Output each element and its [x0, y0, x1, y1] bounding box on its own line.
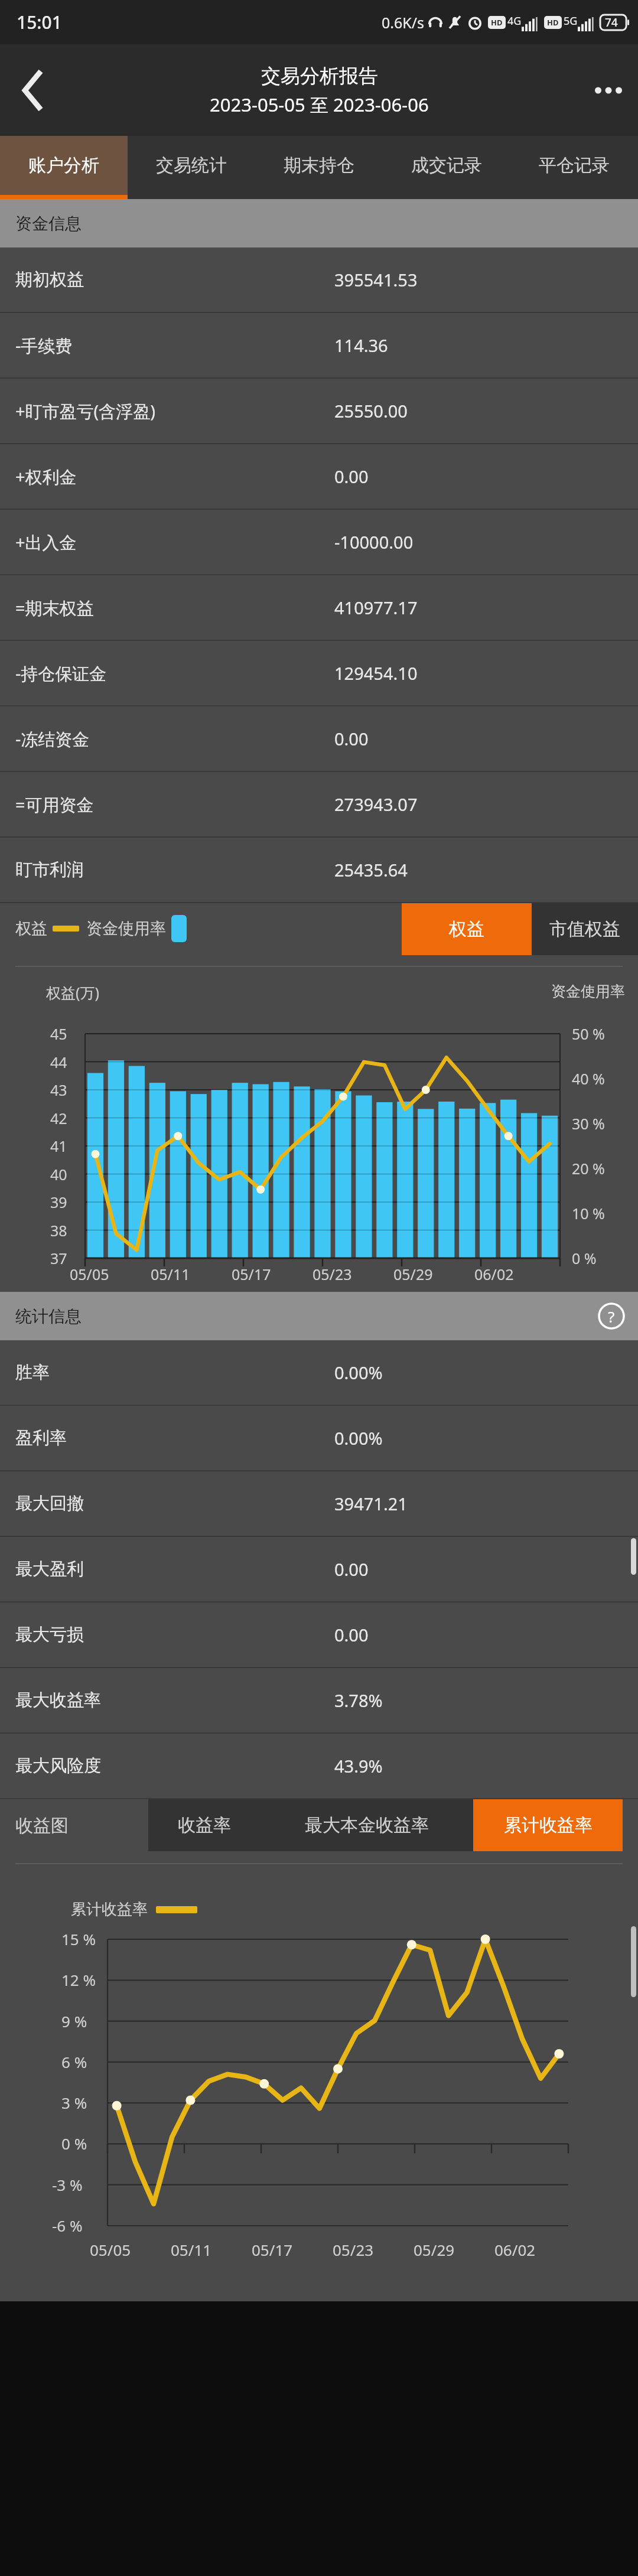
- staticText: 3.78%: [334, 1689, 383, 1712]
- staticText: 15:01: [17, 10, 62, 34]
- staticText: 42: [50, 1108, 67, 1128]
- staticText: 最大回撤: [15, 1493, 334, 1515]
- staticText: 06/02: [494, 2239, 536, 2260]
- button[interactable]: Back: [0, 58, 65, 123]
- button[interactable]: 市值权益: [532, 903, 638, 955]
- button[interactable]: 胜率: [0, 1340, 638, 1405]
- button[interactable]: 最大回撤: [0, 1471, 638, 1536]
- button[interactable]: 盈利率: [0, 1406, 638, 1470]
- staticText: 05/11: [151, 1264, 190, 1284]
- button[interactable]: 交易统计: [128, 136, 255, 199]
- button[interactable]: More options: [579, 58, 638, 123]
- staticText: 累计收益率: [504, 1814, 593, 1836]
- staticText: 0.00%: [334, 1427, 383, 1450]
- button[interactable]: 最大收益率: [0, 1668, 638, 1732]
- staticText: 45: [50, 1024, 67, 1044]
- staticText: 395541.53: [334, 268, 418, 291]
- staticText: 最大风险度: [15, 1755, 334, 1777]
- staticText: 05/29: [414, 2239, 455, 2260]
- staticText: 收益图: [15, 1815, 69, 1837]
- staticText: 05/23: [333, 2239, 374, 2260]
- staticText: 资金信息: [15, 213, 82, 234]
- button[interactable]: 账户分析: [0, 136, 128, 199]
- staticText: 05/23: [313, 1264, 352, 1284]
- staticText: 39: [50, 1192, 67, 1212]
- staticText: 权益: [15, 919, 47, 939]
- staticText: 20 %: [572, 1158, 605, 1178]
- staticText: 12 %: [61, 1969, 96, 1990]
- button[interactable]: +权利金: [0, 444, 638, 509]
- staticText: -10000.00: [334, 530, 414, 553]
- staticText: HD: [491, 17, 503, 28]
- button[interactable]: 期初权益: [0, 247, 638, 312]
- staticText: 44: [50, 1052, 67, 1072]
- staticText: 市值权益: [549, 918, 620, 940]
- staticText: 37: [50, 1248, 67, 1268]
- staticText: 0.00: [334, 727, 369, 750]
- button[interactable]: =期末权益: [0, 575, 638, 640]
- button[interactable]: 收益率: [148, 1799, 261, 1851]
- staticText: 权益(万): [46, 982, 100, 1002]
- staticText: =期末权益: [15, 596, 334, 620]
- staticText: 权益: [449, 918, 484, 940]
- staticText: 2023-05-05 至 2023-06-06: [210, 92, 429, 117]
- staticText: +出入金: [15, 530, 334, 554]
- staticText: 期末持仓: [284, 154, 354, 177]
- button[interactable]: Help: [598, 1302, 625, 1330]
- button[interactable]: 期末持仓: [255, 136, 383, 199]
- button[interactable]: 最大盈利: [0, 1537, 638, 1601]
- button[interactable]: +出入金: [0, 510, 638, 574]
- staticText: 盯市利润: [15, 859, 334, 881]
- staticText: 410977.17: [334, 596, 418, 619]
- staticText: 15 %: [61, 1929, 96, 1949]
- staticText: 交易分析报告: [261, 64, 378, 89]
- button[interactable]: 最大风险度: [0, 1734, 638, 1798]
- staticText: 累计收益率: [71, 1900, 148, 1919]
- staticText: 平仓记录: [539, 154, 610, 177]
- staticText: 50 %: [572, 1024, 605, 1044]
- staticText: 41: [50, 1136, 67, 1156]
- staticText: 129454.10: [334, 662, 418, 685]
- staticText: -3 %: [52, 2174, 83, 2195]
- staticText: 统计信息: [15, 1306, 82, 1327]
- button[interactable]: -手续费: [0, 313, 638, 377]
- button[interactable]: 盯市利润: [0, 838, 638, 902]
- staticText: 05/17: [232, 1264, 271, 1284]
- staticText: 05/11: [171, 2239, 212, 2260]
- button[interactable]: -持仓保证金: [0, 641, 638, 705]
- button[interactable]: 最大本金收益率: [261, 1799, 473, 1851]
- staticText: 43.9%: [334, 1754, 383, 1777]
- staticText: -手续费: [15, 334, 334, 357]
- staticText: 交易统计: [156, 154, 227, 177]
- staticText: 最大本金收益率: [305, 1814, 429, 1836]
- button[interactable]: =可用资金: [0, 772, 638, 836]
- button[interactable]: 权益: [402, 903, 532, 955]
- staticText: 收益率: [178, 1814, 231, 1836]
- button[interactable]: 平仓记录: [510, 136, 638, 199]
- button[interactable]: 累计收益率: [473, 1799, 623, 1851]
- button[interactable]: 最大亏损: [0, 1603, 638, 1667]
- staticText: 3 %: [61, 2092, 87, 2113]
- staticText: 0.00: [334, 1623, 369, 1646]
- staticText: =可用资金: [15, 793, 334, 816]
- staticText: 4G: [507, 14, 522, 28]
- staticText: 05/05: [90, 2239, 131, 2260]
- staticText: 盈利率: [15, 1427, 334, 1449]
- staticText: HD: [547, 17, 559, 28]
- staticText: 胜率: [15, 1362, 334, 1383]
- staticText: 25550.00: [334, 399, 408, 422]
- staticText: +权利金: [15, 465, 334, 489]
- staticText: +盯市盈亏(含浮盈): [15, 399, 334, 423]
- staticText: 最大收益率: [15, 1689, 334, 1711]
- button[interactable]: -冻结资金: [0, 706, 638, 771]
- button[interactable]: 成交记录: [383, 136, 510, 199]
- button[interactable]: +盯市盈亏(含浮盈): [0, 379, 638, 443]
- staticText: 05/17: [252, 2239, 293, 2260]
- staticText: 期初权益: [15, 269, 334, 291]
- staticText: 9 %: [61, 2011, 87, 2031]
- staticText: 74: [605, 15, 618, 30]
- staticText: -冻结资金: [15, 727, 334, 751]
- staticText: 114.36: [334, 334, 388, 357]
- staticText: 0 %: [61, 2133, 87, 2154]
- staticText: 账户分析: [28, 154, 99, 177]
